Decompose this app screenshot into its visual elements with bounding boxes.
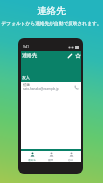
staticText: 9:41 xyxy=(23,45,29,49)
staticText: sato-hanako@example.jp xyxy=(23,87,59,91)
staticText: 履歴 xyxy=(48,158,54,161)
staticText: 佐藤 xyxy=(23,83,30,87)
button[interactable]: 佐藤 xyxy=(21,82,81,92)
button[interactable]: 自分 xyxy=(62,151,80,162)
staticText: 連絡先 xyxy=(22,52,37,58)
button[interactable]: Edit contact xyxy=(67,53,73,59)
button[interactable]: 連絡先 xyxy=(23,151,41,162)
staticText: デフォルトから連絡先が自動で反映されます。 xyxy=(0,20,103,26)
staticText: 連絡先 xyxy=(0,5,103,17)
button[interactable]: Favorites xyxy=(75,53,81,59)
staticText: 連絡先 xyxy=(28,158,36,161)
button[interactable]: 友人 xyxy=(22,75,30,80)
button[interactable]: 履歴 xyxy=(42,151,60,162)
staticText: 自分 xyxy=(68,158,74,161)
